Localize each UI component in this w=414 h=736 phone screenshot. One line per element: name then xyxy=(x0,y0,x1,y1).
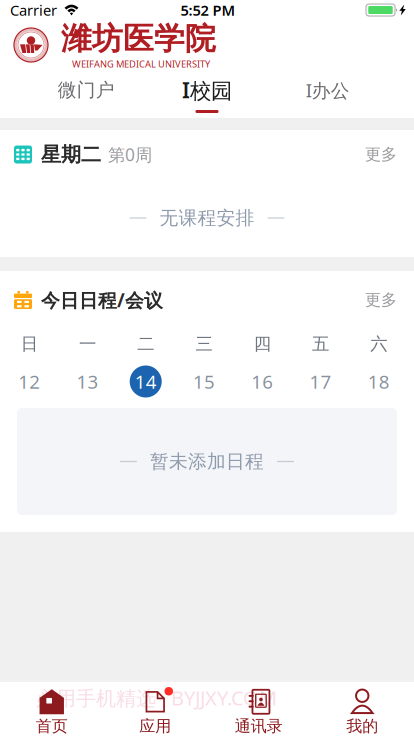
staticText: 15 xyxy=(193,369,215,394)
button[interactable]: I校园 xyxy=(147,70,267,118)
staticText: I校园 xyxy=(182,76,232,104)
staticText: 第0周 xyxy=(108,143,152,166)
button[interactable]: 微门户 xyxy=(26,70,147,118)
button[interactable]: 我的 xyxy=(310,681,414,736)
button[interactable]: 更多 xyxy=(365,145,397,164)
staticText: 更多 xyxy=(365,145,397,164)
staticText: 星期二 xyxy=(41,142,101,167)
staticText: 暂未添加日程 xyxy=(150,450,264,473)
staticText: 14 xyxy=(135,369,157,394)
staticText: 必用手机精选 · BYJJXY.COM xyxy=(36,684,414,736)
staticText: 17 xyxy=(310,369,332,394)
staticText: 三 xyxy=(195,333,212,355)
staticText: 一 xyxy=(79,333,96,355)
staticText: 六 xyxy=(370,333,387,355)
staticText: 应用 xyxy=(139,716,171,736)
button[interactable]: 应用 xyxy=(103,681,207,736)
staticText: 四 xyxy=(254,333,271,355)
button[interactable]: 更多 xyxy=(365,290,397,310)
staticText: 日 xyxy=(21,333,38,355)
staticText: 通讯录 xyxy=(235,716,283,736)
staticText: 无课程安排 xyxy=(159,206,254,229)
staticText: 微门户 xyxy=(58,78,115,101)
staticText: Carrier xyxy=(10,0,57,20)
staticText: 5:52 PM xyxy=(180,0,235,20)
staticText: 我的 xyxy=(346,716,378,736)
staticText: 18 xyxy=(368,369,390,394)
staticText: 潍坊医学院 xyxy=(61,20,216,58)
staticText: 五 xyxy=(312,333,329,355)
staticText: 12 xyxy=(18,369,40,394)
staticText: 二 xyxy=(137,333,154,355)
staticText: 更多 xyxy=(365,290,397,310)
staticText: WEIFANG MEDICAL UNIVERSITY xyxy=(72,58,210,70)
staticText: 今日日程/会议 xyxy=(41,288,163,312)
staticText: I办公 xyxy=(306,78,350,102)
staticText: 首页 xyxy=(36,716,68,736)
button[interactable]: 通讯录 xyxy=(207,681,310,736)
button[interactable]: I办公 xyxy=(267,70,388,118)
button[interactable]: 首页 xyxy=(0,681,103,736)
staticText: 16 xyxy=(251,369,273,394)
staticText: 13 xyxy=(76,369,98,394)
